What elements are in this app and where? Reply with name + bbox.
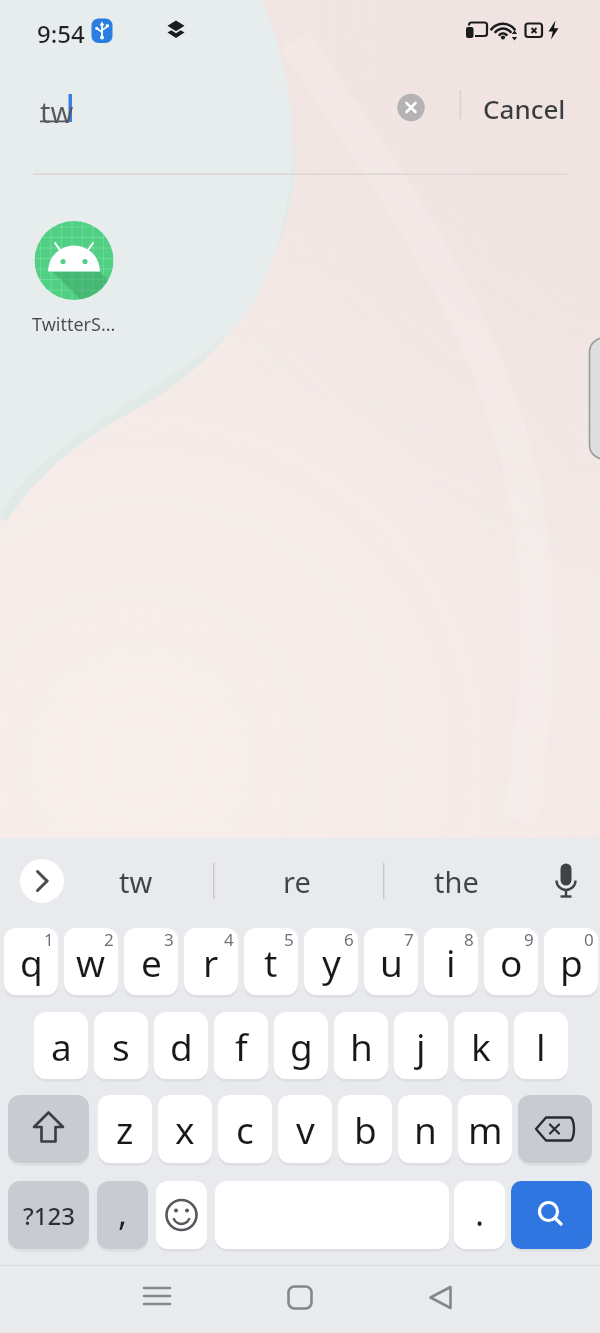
staticText: 1 (44, 928, 54, 951)
staticText: 9 (524, 928, 534, 951)
staticText: n (414, 1104, 437, 1154)
staticText: m (468, 1104, 503, 1154)
staticText: 8 (464, 928, 474, 951)
staticText: b (354, 1104, 377, 1154)
staticText: o (500, 937, 523, 987)
button[interactable]: w (64, 928, 118, 995)
staticText: re (283, 862, 311, 901)
button[interactable] (34, 220, 114, 332)
button[interactable]: c (218, 1095, 272, 1163)
staticText: the (434, 862, 479, 901)
button[interactable] (544, 859, 588, 903)
button[interactable] (411, 1270, 471, 1328)
button[interactable]: j (394, 1012, 448, 1079)
staticText: p (560, 937, 583, 987)
button[interactable]: , (97, 1181, 148, 1249)
staticText: , (118, 1190, 128, 1236)
button[interactable]: q (4, 928, 58, 995)
button[interactable]: z (98, 1095, 152, 1163)
button[interactable]: r (184, 928, 238, 995)
staticText: f (235, 1021, 248, 1071)
staticText: g (290, 1021, 313, 1071)
button[interactable]: u (364, 928, 418, 995)
staticText: ?123 (23, 1199, 75, 1232)
staticText: 6 (344, 928, 354, 951)
button[interactable]: the (356, 856, 556, 906)
staticText: tw (40, 92, 74, 131)
button[interactable]: b (338, 1095, 392, 1163)
staticText: q (20, 937, 43, 987)
button[interactable]: h (334, 1012, 388, 1079)
staticText: 7 (404, 928, 414, 951)
staticText: t (264, 937, 278, 987)
staticText: x (175, 1104, 195, 1154)
button[interactable]: ?123 (8, 1181, 89, 1249)
staticText: e (141, 937, 162, 987)
staticText: z (116, 1104, 134, 1154)
staticText: j (416, 1021, 426, 1071)
button[interactable]: k (454, 1012, 508, 1079)
staticText: c (236, 1104, 254, 1154)
staticText: h (350, 1021, 373, 1071)
button[interactable]: re (197, 856, 397, 906)
staticText: 3 (164, 928, 174, 951)
button[interactable]: p (544, 928, 598, 995)
button[interactable]: s (94, 1012, 148, 1079)
staticText: 0 (584, 928, 594, 951)
staticText: TwitterS... (32, 312, 116, 337)
button[interactable]: n (398, 1095, 452, 1163)
button[interactable] (395, 91, 428, 124)
staticText: s (112, 1021, 130, 1071)
staticText: w (76, 937, 106, 987)
staticText: i (446, 937, 456, 987)
staticText: k (471, 1021, 491, 1071)
button[interactable]: l (514, 1012, 568, 1079)
button[interactable]: g (274, 1012, 328, 1079)
button[interactable]: y (304, 928, 358, 995)
button[interactable]: i (424, 928, 478, 995)
button[interactable] (127, 1270, 187, 1328)
button[interactable] (511, 1181, 592, 1249)
button[interactable] (20, 859, 64, 903)
staticText: r (203, 937, 219, 987)
button[interactable]: x (158, 1095, 212, 1163)
button[interactable]: a (34, 1012, 88, 1079)
button[interactable] (518, 1095, 592, 1163)
button[interactable]: t (244, 928, 298, 995)
staticText: u (380, 937, 403, 987)
staticText: y (322, 937, 341, 987)
button[interactable]: Cancel (477, 88, 572, 128)
button[interactable]: f (214, 1012, 268, 1079)
staticText: Cancel (483, 91, 566, 126)
staticText: d (170, 1021, 193, 1071)
button[interactable]: d (154, 1012, 208, 1079)
staticText: tw (119, 862, 153, 901)
staticText: 9:54 (37, 17, 85, 50)
button[interactable]: . (454, 1181, 505, 1249)
button[interactable]: tw (36, 856, 236, 906)
button[interactable] (156, 1181, 207, 1249)
button[interactable] (8, 1095, 89, 1163)
button[interactable]: m (458, 1095, 512, 1163)
button[interactable]: v (278, 1095, 332, 1163)
staticText: 2 (104, 928, 114, 951)
button[interactable] (270, 1270, 330, 1328)
staticText: 4 (224, 928, 234, 951)
staticText: 5 (284, 928, 294, 951)
staticText: v (296, 1104, 315, 1154)
staticText: l (536, 1021, 546, 1071)
button[interactable]: e (124, 928, 178, 995)
staticText: a (51, 1021, 72, 1071)
button[interactable]: o (484, 928, 538, 995)
staticText: . (475, 1190, 485, 1236)
